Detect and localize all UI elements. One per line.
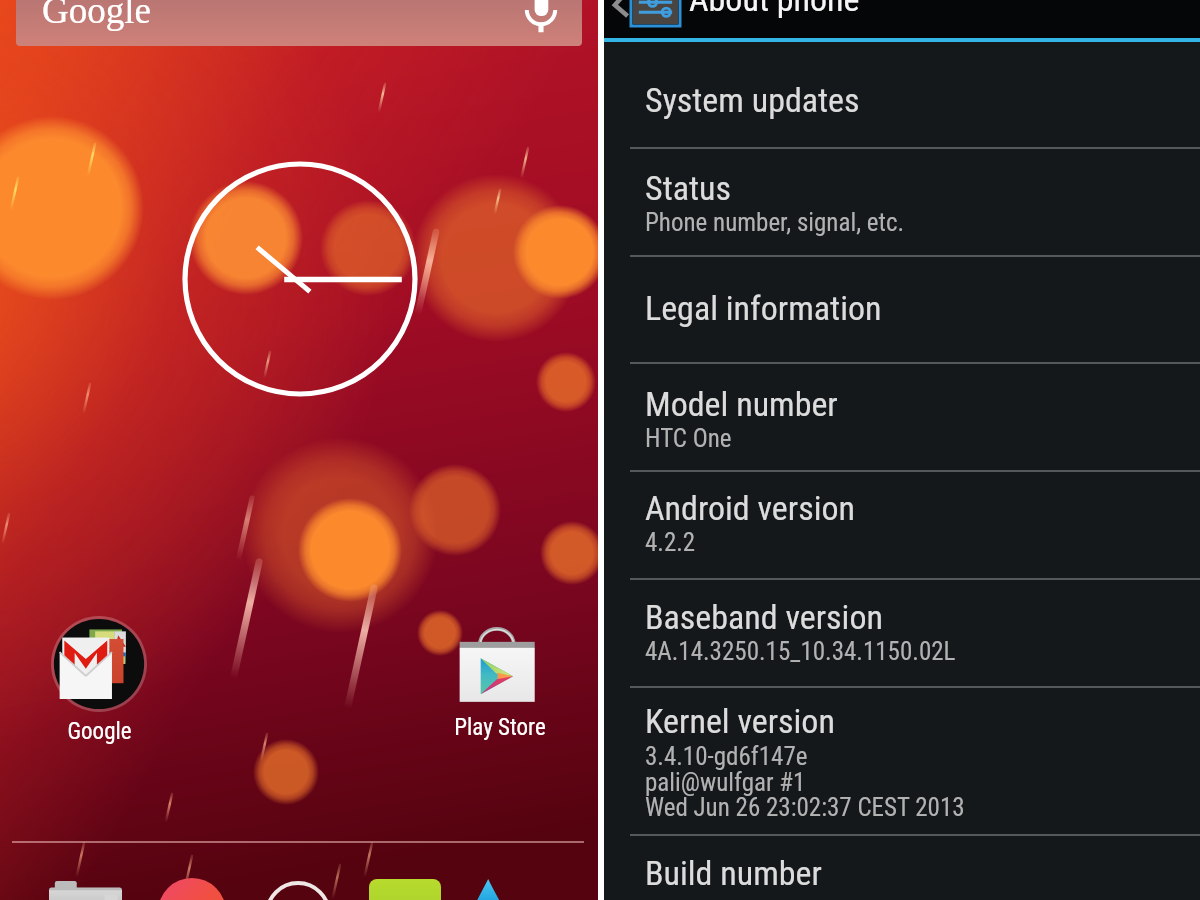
staticText: 3.4.10-gd6f147e xyxy=(645,742,808,771)
button[interactable]: Google xyxy=(16,0,582,46)
button[interactable]: Google xyxy=(51,616,148,748)
staticText: Google xyxy=(67,718,132,745)
button[interactable] xyxy=(604,43,1200,147)
button[interactable] xyxy=(604,149,1200,255)
staticText: Baseband version xyxy=(645,597,883,637)
button[interactable]: Navigate up xyxy=(604,0,1200,38)
button[interactable] xyxy=(604,688,1200,834)
button[interactable]: Browser xyxy=(470,879,505,900)
button[interactable]: Messaging xyxy=(369,879,441,900)
staticText: About phone xyxy=(689,0,860,19)
button[interactable] xyxy=(604,580,1200,686)
staticText: System updates xyxy=(645,80,860,120)
staticText: Play Store xyxy=(454,714,546,741)
staticText: Build number xyxy=(645,853,822,893)
staticText: Status xyxy=(645,168,731,208)
staticText: pali@wulfgar #1 xyxy=(645,768,806,797)
staticText: Google xyxy=(42,0,151,31)
staticText: Wed Jun 26 23:02:37 CEST 2013 xyxy=(645,793,965,822)
button[interactable]: Camera xyxy=(49,881,122,900)
button[interactable]: Clock widget xyxy=(181,160,419,398)
staticText: Android version xyxy=(645,488,855,528)
staticText: 4A.14.3250.15_10.34.1150.02L xyxy=(645,637,956,666)
button[interactable]: Play Store xyxy=(428,616,571,748)
other: Voice search xyxy=(526,0,556,33)
button[interactable]: People xyxy=(158,878,226,900)
button[interactable]: All apps xyxy=(265,881,331,900)
staticText: 4.2.2 xyxy=(645,528,696,557)
staticText: Model number xyxy=(645,384,838,424)
button[interactable] xyxy=(604,257,1200,362)
staticText: Legal information xyxy=(645,288,882,328)
button[interactable] xyxy=(604,472,1200,578)
staticText: Kernel version xyxy=(645,701,835,741)
button[interactable] xyxy=(604,836,1200,900)
staticText: HTC One xyxy=(645,424,732,453)
button[interactable] xyxy=(604,364,1200,470)
staticText: Phone number, signal, etc. xyxy=(645,208,905,237)
